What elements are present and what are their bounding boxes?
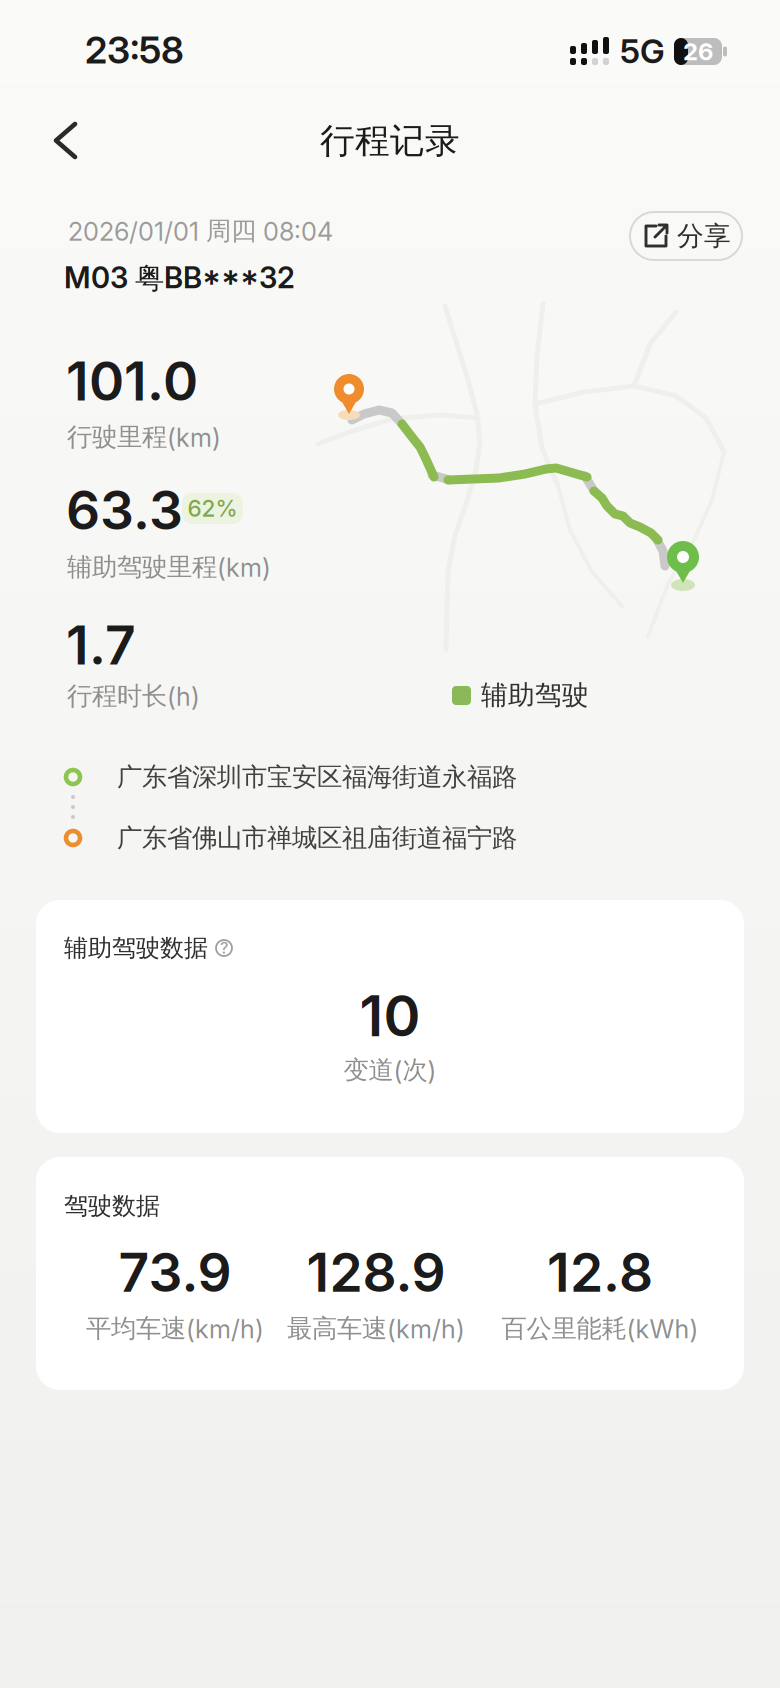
staticText: 行程时长(h) [67,680,200,712]
staticText: 101.0 [66,349,198,413]
staticText: 5G [620,31,665,71]
staticText: 辅助驾驶数据 [64,933,208,963]
staticText: 10 [359,982,420,1050]
staticText: 1.7 [66,613,136,677]
staticText: M03 粤BB***32 [64,260,295,297]
staticText: 62% [187,495,237,522]
staticText: 驾驶数据 [64,1191,160,1221]
staticText: 2026/01/01 周四 08:04 [68,215,333,247]
staticText: 变道(次) [343,1054,436,1086]
staticText: 26 [683,37,713,66]
staticText: 平均车速(km/h) [86,1312,264,1344]
staticText: 辅助驾驶里程(km) [67,551,271,583]
staticText: ? [220,938,228,958]
staticText: 23:58 [85,27,184,73]
staticText: 73.9 [118,1240,231,1304]
button[interactable]: 分享 [630,212,742,260]
staticText: 最高车速(km/h) [287,1312,465,1344]
staticText: 广东省佛山市禅城区祖庙街道福宁路 [117,822,517,854]
button[interactable]: 辅助驾驶数据说明 [214,938,234,958]
staticText: 分享 [677,219,731,253]
staticText: 63.3 [66,478,183,542]
staticText: 12.8 [547,1240,653,1304]
staticText: 行驶里程(km) [67,421,221,453]
staticText: 行程记录 [320,119,460,163]
staticText: 广东省深圳市宝安区福海街道永福路 [117,761,517,793]
staticText: 辅助驾驶 [481,678,589,712]
staticText: 128.9 [306,1240,445,1304]
staticText: 百公里能耗(kWh) [501,1312,698,1344]
button[interactable]: 返回 [42,116,89,165]
